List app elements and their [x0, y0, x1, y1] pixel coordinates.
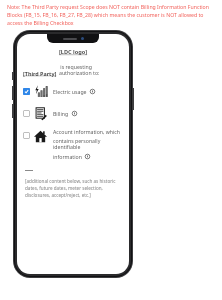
- button[interactable]: Electric usage: [23, 88, 30, 95]
- button[interactable]: Account information: [23, 132, 30, 139]
- staticText: [Third Party]: [23, 70, 57, 77]
- staticText: Billing: [53, 110, 69, 117]
- staticText: is requesting authorization to:: [59, 63, 124, 77]
- staticText: disclosures, accept/reject, etc.]: [25, 192, 91, 198]
- button[interactable]: Electric usage: [23, 84, 124, 99]
- button[interactable]: Billing: [23, 106, 124, 121]
- staticText: contains personally identifiable: [53, 137, 124, 151]
- button[interactable]: Account information: [23, 128, 124, 160]
- staticText: Note: The Third Party request Scope does…: [7, 3, 209, 10]
- staticText: Account information, which: [53, 128, 121, 135]
- staticText: dates, future dates, meter selection,: [25, 185, 103, 191]
- staticText: information: [53, 153, 82, 160]
- staticText: [additional content below, such as histo…: [25, 178, 116, 184]
- staticText: [LDC logo]: [59, 48, 88, 56]
- staticText: Electric usage: [53, 88, 87, 95]
- staticText: Blocks (FB_15, FB_16, FB_27, FB_28) whic…: [7, 11, 204, 18]
- button[interactable]: Billing: [23, 110, 30, 117]
- staticText: access the Billing Checkbox: [7, 19, 74, 26]
